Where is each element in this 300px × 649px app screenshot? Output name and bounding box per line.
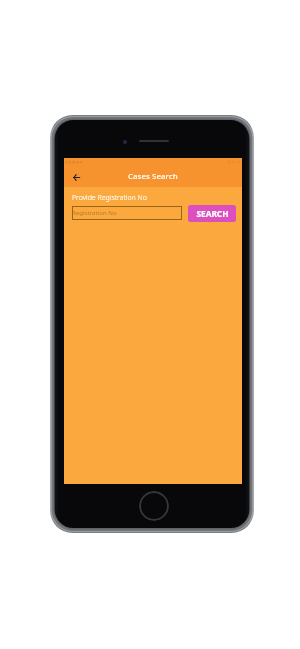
staticText: Provide Registration No (72, 193, 147, 203)
button[interactable]: Home (139, 491, 169, 521)
button[interactable]: Back (67, 168, 85, 186)
staticText: Registration No (72, 208, 117, 216)
button[interactable]: Registration No (72, 206, 182, 220)
staticText: Cases Search (128, 171, 178, 182)
staticText: SEARCH (196, 208, 229, 219)
button[interactable]: SEARCH (188, 205, 236, 222)
